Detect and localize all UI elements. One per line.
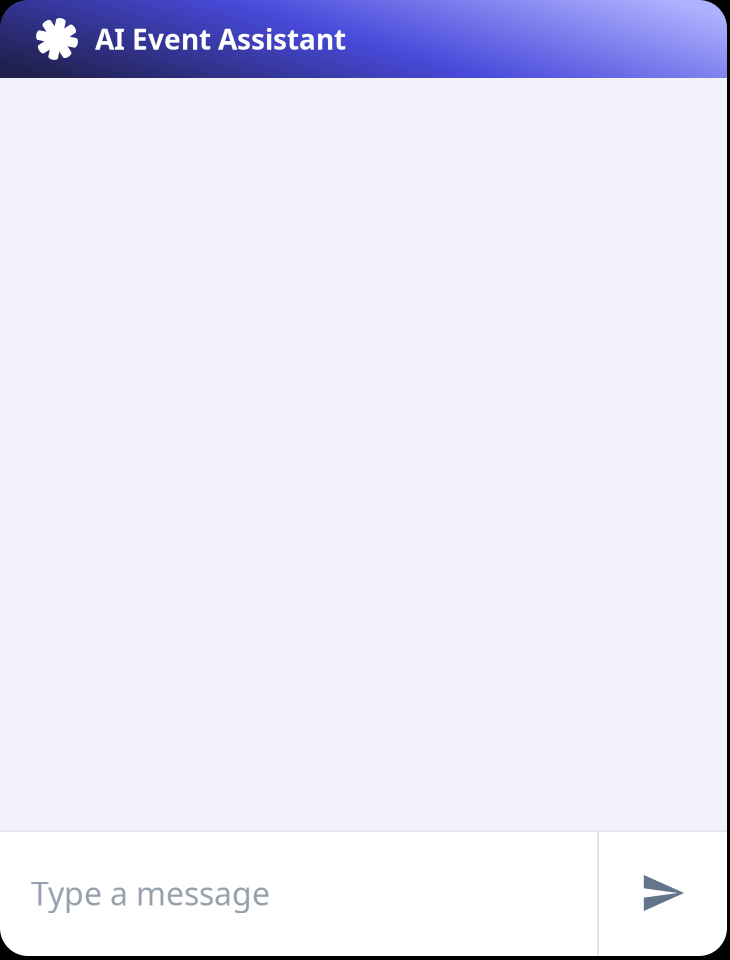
button[interactable]: Send [599, 830, 728, 956]
staticText: AI Event Assistant [95, 20, 346, 58]
button[interactable]: Type a message [0, 830, 597, 956]
staticText: Type a message [31, 872, 270, 914]
